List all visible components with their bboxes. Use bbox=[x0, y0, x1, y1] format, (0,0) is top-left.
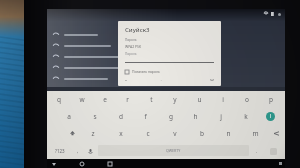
staticText: QWERTY bbox=[166, 148, 181, 153]
button[interactable]: Enter bbox=[263, 144, 283, 158]
staticText: m bbox=[252, 129, 259, 138]
staticText: ?123 bbox=[55, 148, 65, 154]
button[interactable]: u bbox=[187, 91, 211, 108]
button[interactable]: l bbox=[258, 108, 283, 125]
staticText: h bbox=[193, 112, 198, 121]
button[interactable]: m bbox=[242, 125, 269, 142]
button[interactable]: Shift bbox=[65, 125, 79, 142]
staticText: y bbox=[173, 95, 177, 104]
staticText: Пароль bbox=[125, 38, 137, 42]
button[interactable]: j bbox=[208, 108, 233, 125]
button[interactable]: a bbox=[56, 108, 82, 125]
button[interactable]: i bbox=[211, 91, 235, 108]
button[interactable]: q bbox=[47, 91, 70, 108]
staticText: Показать пароль bbox=[132, 69, 160, 74]
button[interactable]: v bbox=[161, 125, 188, 142]
staticText: q bbox=[57, 95, 61, 104]
staticText: p bbox=[269, 95, 273, 104]
button[interactable]: z bbox=[79, 125, 107, 142]
button[interactable]: b bbox=[188, 125, 215, 142]
staticText: l bbox=[270, 113, 272, 120]
button[interactable]: x bbox=[107, 125, 134, 142]
button[interactable]: Показать пароль bbox=[125, 69, 214, 74]
button[interactable]: g bbox=[158, 108, 183, 125]
staticText: , bbox=[77, 148, 79, 154]
button[interactable]: QWERTY bbox=[98, 145, 249, 156]
staticText: v bbox=[173, 129, 177, 138]
button[interactable]: , bbox=[71, 144, 84, 158]
button[interactable]: r bbox=[116, 91, 139, 108]
button[interactable]: Backspace bbox=[269, 125, 283, 142]
button[interactable]: k bbox=[233, 108, 258, 125]
button[interactable]: Home bbox=[75, 159, 89, 168]
button[interactable]: e bbox=[93, 91, 116, 108]
button[interactable]: s bbox=[82, 108, 108, 125]
staticText: Пароль bbox=[125, 52, 137, 56]
button[interactable]: h bbox=[183, 108, 208, 125]
staticText: . bbox=[256, 148, 258, 154]
button[interactable]: Recent apps bbox=[103, 159, 117, 168]
button[interactable] bbox=[53, 62, 285, 73]
button[interactable]: Voice input bbox=[84, 144, 97, 158]
staticText: n bbox=[226, 129, 231, 138]
staticText: z bbox=[91, 129, 95, 138]
staticText: j bbox=[220, 112, 222, 121]
staticText: i bbox=[222, 95, 224, 104]
other: Wi-Fi bbox=[264, 12, 268, 16]
other: Battery bbox=[271, 12, 275, 16]
staticText: Расширенные настройки bbox=[125, 79, 167, 81]
button[interactable]: d bbox=[108, 108, 133, 125]
staticText: s bbox=[93, 112, 97, 121]
button[interactable]: n bbox=[215, 125, 242, 142]
button[interactable] bbox=[53, 51, 285, 62]
staticText: w bbox=[79, 95, 85, 104]
button[interactable]: o bbox=[235, 91, 259, 108]
staticText: k bbox=[244, 112, 248, 121]
other: Expand bbox=[210, 79, 214, 81]
button[interactable]: c bbox=[134, 125, 161, 142]
button[interactable]: p bbox=[259, 91, 283, 108]
button[interactable]: Screenshot bbox=[275, 159, 285, 168]
staticText: o bbox=[245, 95, 249, 104]
staticText: g bbox=[169, 112, 173, 121]
staticText: Сиуйск3 bbox=[125, 26, 150, 34]
staticText: x bbox=[119, 129, 123, 138]
button[interactable]: f bbox=[133, 108, 158, 125]
staticText: d bbox=[119, 112, 123, 121]
staticText: WPA2 PSK bbox=[125, 44, 142, 49]
button[interactable]: t bbox=[139, 91, 163, 108]
button[interactable] bbox=[53, 29, 285, 40]
staticText: c bbox=[146, 129, 150, 138]
staticText: r bbox=[126, 95, 129, 104]
button[interactable] bbox=[53, 40, 285, 51]
staticText: f bbox=[144, 112, 147, 121]
button[interactable]: y bbox=[163, 91, 187, 108]
button[interactable]: ?123 bbox=[49, 144, 71, 158]
button[interactable]: w bbox=[70, 91, 93, 108]
staticText: b bbox=[200, 129, 204, 138]
button[interactable] bbox=[53, 73, 285, 84]
button[interactable]: Расширенные настройки bbox=[125, 79, 214, 81]
staticText: e bbox=[103, 95, 107, 104]
staticText: u bbox=[197, 95, 202, 104]
staticText: a bbox=[67, 112, 71, 121]
staticText: t bbox=[150, 95, 153, 104]
button[interactable]: Back bbox=[47, 159, 61, 168]
